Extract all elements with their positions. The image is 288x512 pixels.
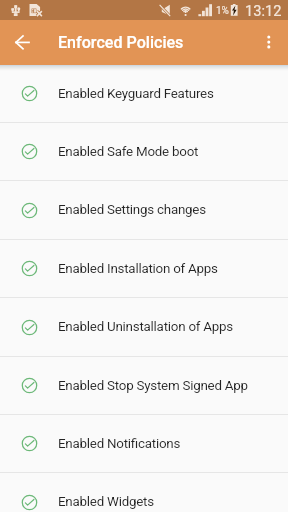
staticText: Enabled Notifications	[58, 436, 181, 452]
button[interactable]: Enabled Installation of Apps	[0, 240, 288, 297]
staticText: Enabled Uninstallation of Apps	[58, 319, 233, 335]
staticText: Enforced Policies	[58, 33, 184, 52]
button[interactable]: Enabled Uninstallation of Apps	[0, 298, 288, 356]
button[interactable]: Enabled Keyguard Features	[0, 65, 288, 122]
staticText: Enabled Safe Mode boot	[58, 144, 199, 160]
button[interactable]: Enabled Safe Mode boot	[0, 123, 288, 180]
button[interactable]: Enabled Notifications	[0, 415, 288, 472]
staticText: Enabled Keyguard Features	[58, 86, 214, 102]
button[interactable]: Enabled Widgets	[0, 473, 288, 512]
button[interactable]: Enabled Settings changes	[0, 181, 288, 239]
staticText: Enabled Settings changes	[58, 202, 206, 218]
staticText: Enabled Widgets	[58, 494, 154, 510]
staticText: 1%	[216, 5, 229, 17]
button[interactable]: Navigate up	[6, 20, 44, 65]
staticText: Enabled Installation of Apps	[58, 261, 218, 277]
staticText: 13:12	[245, 2, 282, 19]
staticText: Enabled Stop System Signed App	[58, 378, 248, 394]
button[interactable]: More options	[255, 20, 283, 65]
button[interactable]: Enabled Stop System Signed App	[0, 357, 288, 414]
